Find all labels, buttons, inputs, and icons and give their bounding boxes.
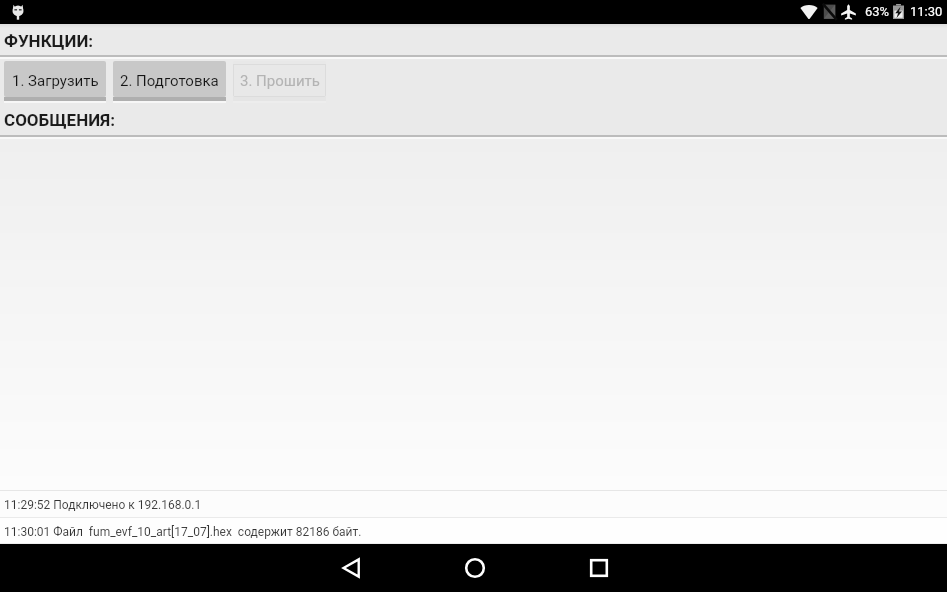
- button[interactable]: Back: [315, 544, 387, 592]
- staticText: 3. Прошить: [240, 72, 320, 90]
- staticText: 11:29:52 Подключено к 192.168.0.1: [4, 498, 202, 512]
- staticText: 1. Загрузить: [12, 72, 99, 90]
- staticText: 11:30:01 Файл fum_evf_10_art[17_07].hex …: [4, 525, 362, 539]
- staticText: 11:30: [910, 4, 943, 19]
- button[interactable]: Recent apps: [563, 544, 635, 592]
- button[interactable]: 2. Подготовка: [113, 61, 226, 97]
- button[interactable]: 11:29:52 Подключено к 192.168.0.1: [0, 491, 947, 517]
- button[interactable]: 11:30:01 Файл fum_evf_10_art[17_07].hex …: [0, 518, 947, 543]
- button[interactable]: 1. Загрузить: [4, 61, 106, 97]
- staticText: 2. Подготовка: [120, 72, 219, 90]
- staticText: 63%: [865, 4, 890, 19]
- staticText: ФУНКЦИИ:: [4, 31, 94, 51]
- button[interactable]: Home: [439, 544, 511, 592]
- button[interactable]: 3. Прошить: [233, 61, 326, 97]
- staticText: СООБЩЕНИЯ:: [4, 110, 116, 130]
